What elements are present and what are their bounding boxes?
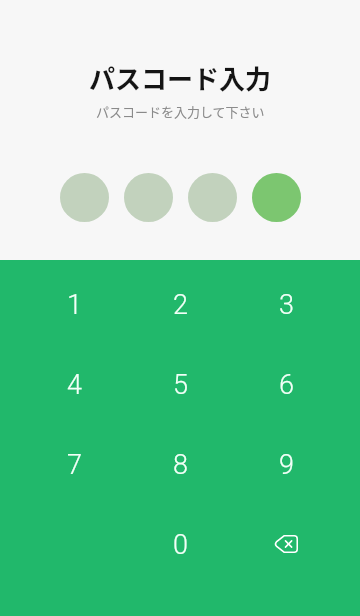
button[interactable]: 0 [140, 505, 220, 585]
button[interactable]: 4 [34, 345, 114, 425]
staticText: 2 [173, 289, 188, 321]
staticText: パスコード入力 [89, 59, 272, 97]
staticText: 8 [173, 449, 188, 481]
button[interactable]: 8 [140, 425, 220, 505]
button[interactable]: 3 [246, 265, 326, 345]
staticText: パスコードを入力して下さい [96, 102, 265, 121]
button[interactable]: 7 [34, 425, 114, 505]
staticText: 6 [279, 369, 294, 401]
button[interactable]: 2 [140, 265, 220, 345]
button[interactable]: 9 [246, 425, 326, 505]
staticText: 7 [67, 449, 82, 481]
button[interactable]: Delete [246, 505, 326, 585]
staticText: 5 [173, 369, 188, 401]
button[interactable]: 5 [140, 345, 220, 425]
staticText: 1 [67, 289, 82, 321]
button[interactable]: 1 [34, 265, 114, 345]
button[interactable]: 6 [246, 345, 326, 425]
staticText: 3 [279, 289, 294, 321]
staticText: 9 [279, 449, 294, 481]
staticText: 0 [173, 529, 188, 561]
staticText: 4 [67, 369, 82, 401]
